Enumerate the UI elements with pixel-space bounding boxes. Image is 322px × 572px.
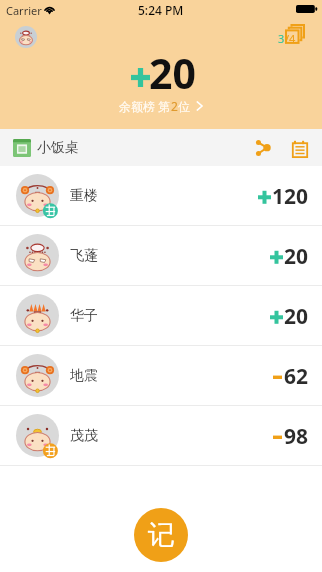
- button[interactable]: Share: [252, 136, 276, 160]
- button[interactable]: 茂茂: [0, 406, 322, 465]
- staticText: 地震: [70, 367, 98, 385]
- staticText: 记: [148, 518, 175, 552]
- button[interactable]: 华子: [0, 286, 322, 345]
- button[interactable]: Notes: [288, 136, 312, 160]
- button[interactable]: Profile: [15, 26, 37, 48]
- staticText: 重楼: [70, 187, 98, 205]
- staticText: 余额榜 第: [119, 98, 171, 114]
- button[interactable]: Cards: [276, 22, 312, 50]
- staticText: 茂茂: [70, 427, 98, 445]
- staticText: 华子: [70, 307, 98, 325]
- staticText: 20: [284, 302, 309, 331]
- staticText: 2: [171, 98, 178, 114]
- staticText: 62: [284, 362, 309, 391]
- staticText: 飞蓬: [70, 247, 98, 265]
- staticText: 位: [178, 99, 190, 114]
- button[interactable]: 地震: [0, 346, 322, 405]
- staticText: /4: [285, 31, 296, 46]
- staticText: 20: [149, 45, 196, 101]
- staticText: 98: [284, 422, 309, 451]
- staticText: 120: [272, 182, 309, 211]
- button[interactable]: 重楼: [0, 166, 322, 225]
- staticText: 5:24 PM: [138, 2, 184, 18]
- button[interactable]: 记账: [134, 508, 188, 562]
- staticText: 小饭桌: [37, 139, 79, 157]
- button[interactable]: 飞蓬: [0, 226, 322, 285]
- staticText: 20: [284, 242, 309, 271]
- staticText: Carrier: [6, 3, 42, 18]
- button[interactable]: 余额榜 第: [119, 98, 203, 114]
- staticText: 3: [278, 31, 285, 46]
